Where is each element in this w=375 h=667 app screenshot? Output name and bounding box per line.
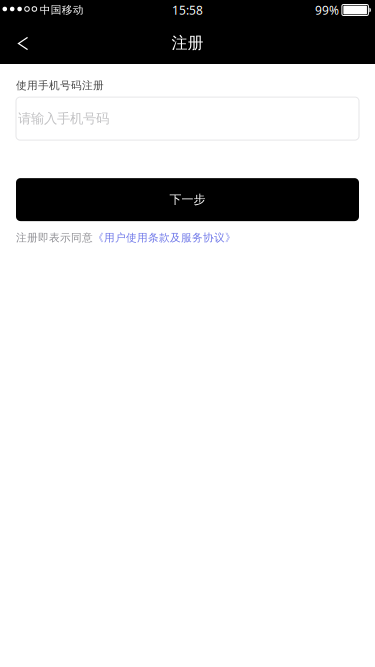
- staticText: 使用手机号码注册: [16, 79, 104, 92]
- staticText: 中国移动: [40, 3, 84, 16]
- staticText: 99%: [315, 2, 339, 18]
- staticText: 15:58: [172, 2, 203, 18]
- button[interactable]: 《用户使用条款及服务协议》: [93, 231, 236, 244]
- staticText: 注册: [171, 33, 203, 53]
- button[interactable]: Back: [0, 20, 44, 64]
- staticText: 注册即表示同意: [16, 231, 93, 244]
- staticText: 下一步: [169, 192, 205, 207]
- button[interactable]: 下一步: [16, 178, 359, 221]
- staticText: 请输入手机号码: [18, 110, 109, 127]
- staticText: 《用户使用条款及服务协议》: [93, 231, 236, 244]
